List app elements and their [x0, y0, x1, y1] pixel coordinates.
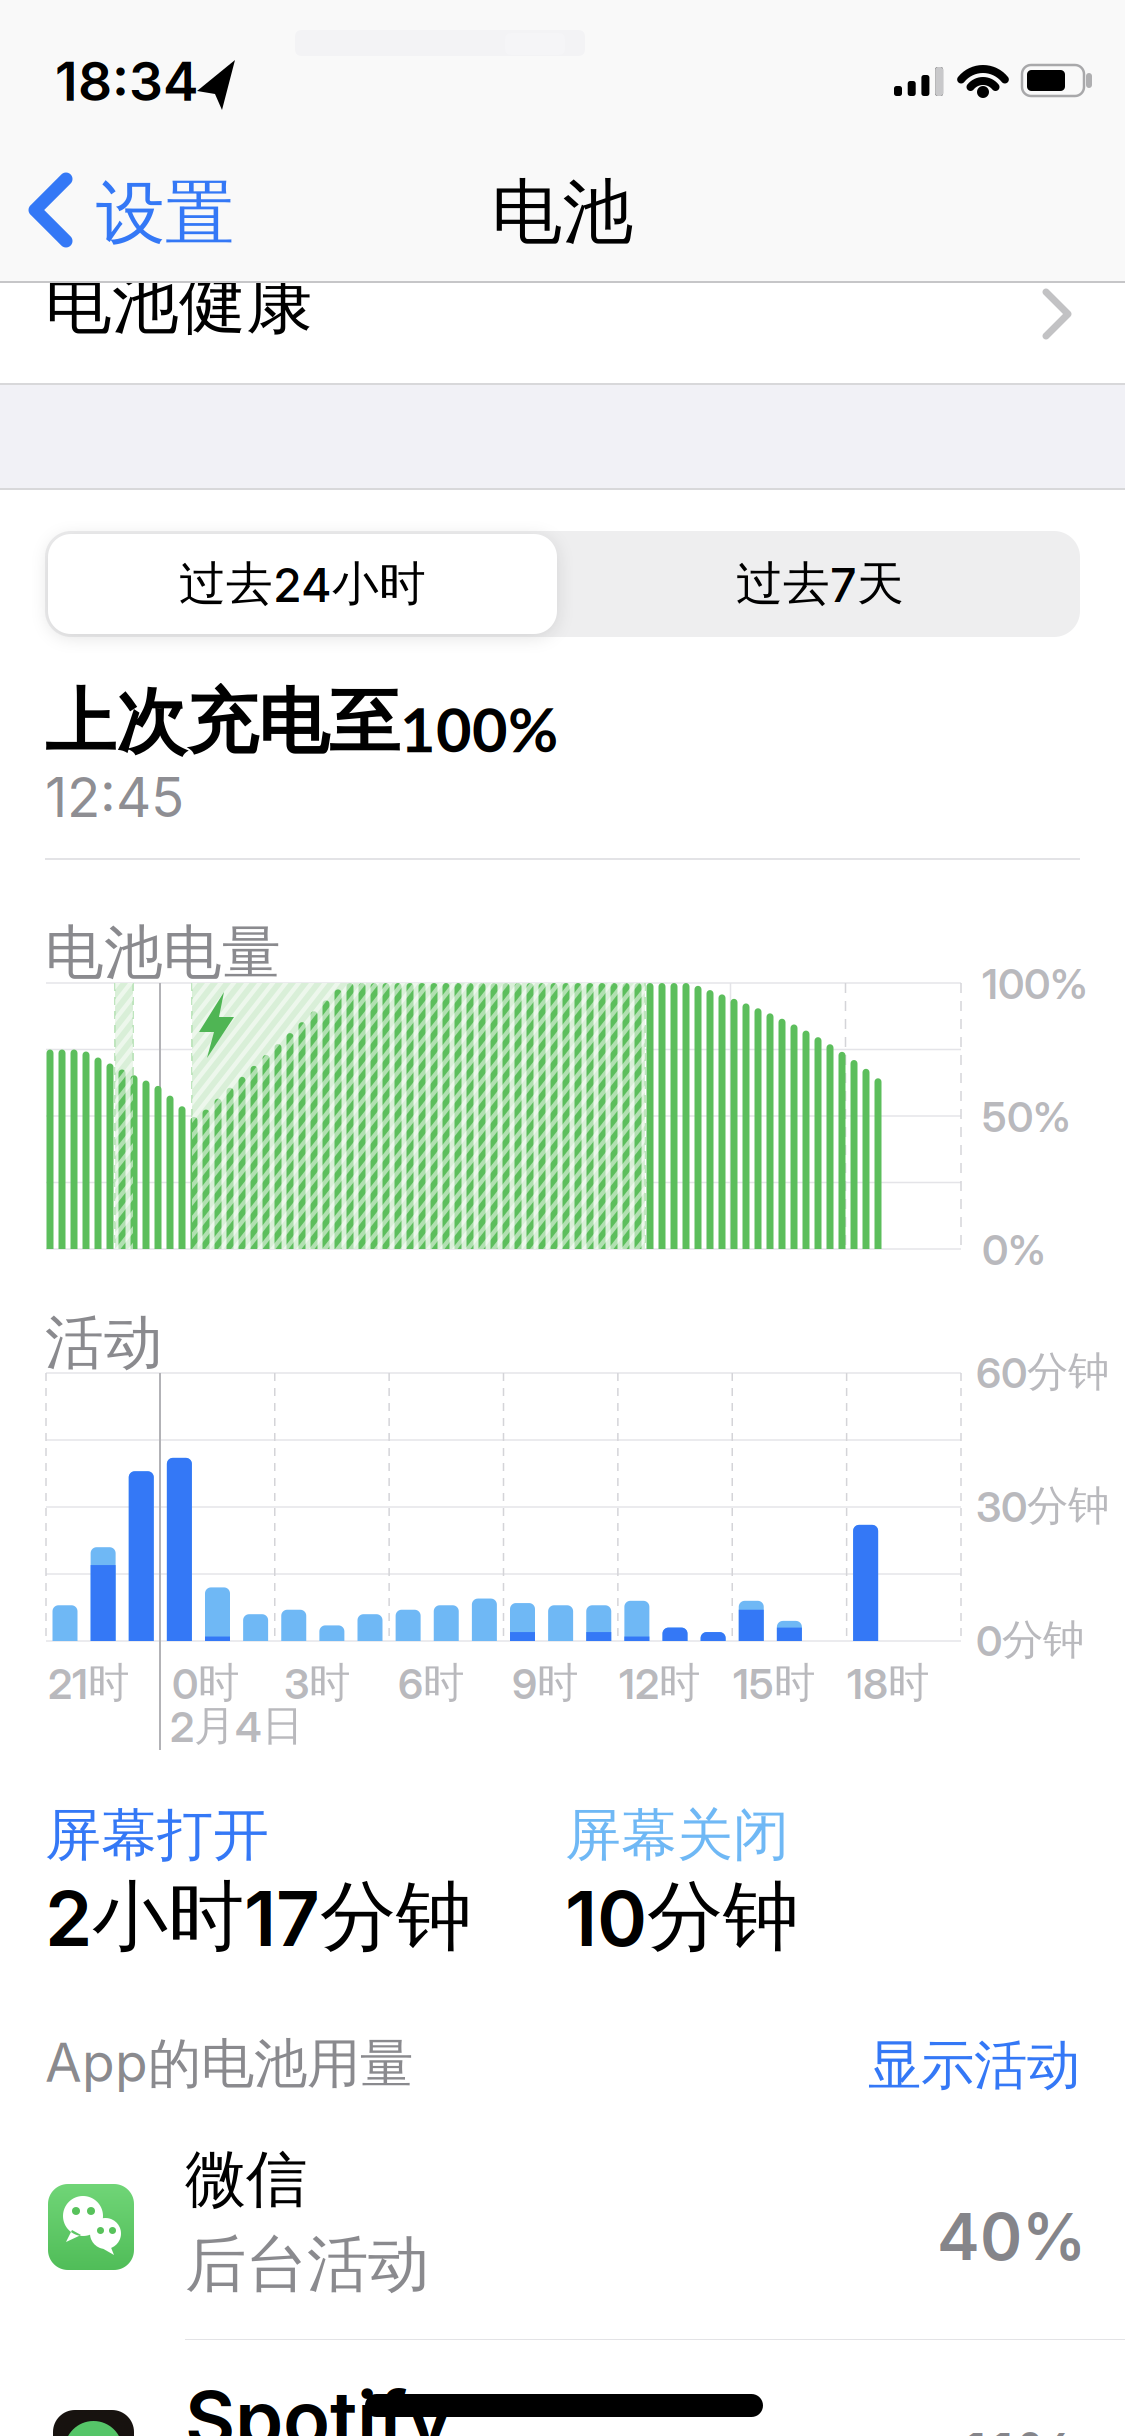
staticText: 30分钟: [976, 1480, 1109, 1532]
button[interactable]: 返回设置: [0, 174, 230, 246]
staticText: 0分钟: [976, 1614, 1084, 1666]
button[interactable]: 显示活动: [780, 2032, 1080, 2099]
staticText: 微信: [185, 2141, 307, 2218]
staticText: 过去7天: [736, 555, 904, 613]
staticText: 0时: [172, 1657, 239, 1709]
staticText: 10分钟: [565, 1869, 799, 1965]
staticText: 100%: [982, 959, 1088, 1009]
staticText: 电池: [491, 168, 633, 257]
button[interactable]: 过去24小时: [48, 534, 557, 634]
staticText: 6时: [398, 1657, 464, 1709]
staticText: 21时: [48, 1657, 129, 1709]
staticText: 后台活动: [185, 2226, 429, 2303]
staticText: 电池电量: [45, 916, 281, 990]
button[interactable]: 过去7天: [560, 531, 1080, 637]
staticText: App的电池用量: [45, 2030, 413, 2097]
staticText: 9时: [512, 1657, 578, 1709]
staticText: 过去24小时: [179, 555, 426, 613]
button[interactable]: Spotify: [0, 2340, 1125, 2436]
staticText: 12:45: [45, 764, 184, 830]
staticText: 15时: [733, 1657, 815, 1709]
staticText: 12时: [619, 1657, 700, 1709]
button[interactable]: 微信: [0, 2130, 1125, 2340]
staticText: 2小时17分钟: [45, 1869, 472, 1965]
staticText: 上次充电至100%: [45, 679, 558, 766]
staticText: 18:34: [55, 49, 199, 113]
staticText: 2月4日: [170, 1700, 303, 1752]
button[interactable]: 电池健康: [0, 282, 1125, 383]
staticText: 屏幕打开: [45, 1800, 269, 1870]
staticText: 18时: [847, 1657, 929, 1709]
staticText: 11%: [960, 2418, 1078, 2436]
staticText: Spotify: [185, 2372, 453, 2436]
staticText: 设置: [96, 170, 234, 257]
staticText: 50%: [982, 1092, 1071, 1142]
staticText: 3时: [284, 1657, 350, 1709]
staticText: 显示活动: [868, 2032, 1080, 2099]
staticText: 0%: [982, 1225, 1046, 1275]
staticText: 电池健康: [45, 262, 313, 346]
staticText: 40%: [937, 2198, 1086, 2275]
staticText: 屏幕关闭: [565, 1800, 789, 1870]
staticText: 活动: [45, 1306, 163, 1380]
staticText: 60分钟: [976, 1346, 1109, 1398]
